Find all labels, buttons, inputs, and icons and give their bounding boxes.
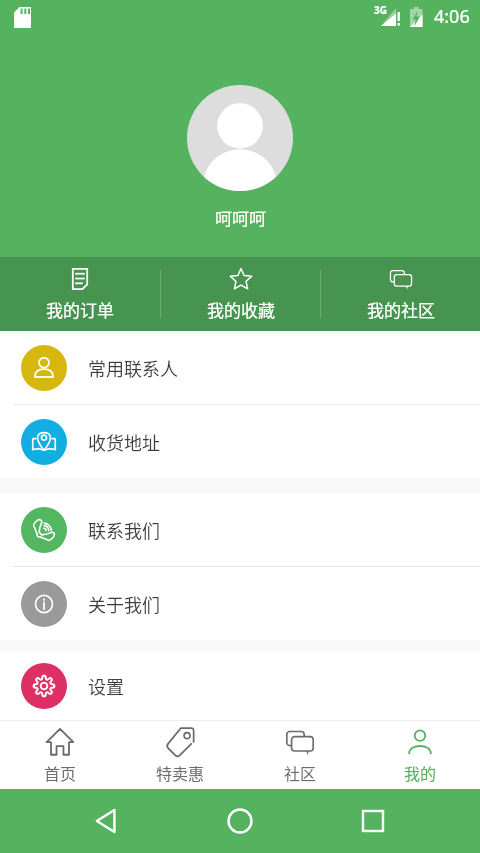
button[interactable]: 我的 (360, 721, 480, 789)
staticText: 设置 (88, 673, 124, 699)
button[interactable]: 设置 (0, 652, 480, 720)
staticText: 我的社区 (367, 297, 435, 322)
button[interactable]: 我的社区 (321, 257, 480, 331)
staticText: 社区 (284, 761, 317, 784)
button[interactable]: 我的收藏 (161, 257, 320, 331)
staticText: 首页 (44, 761, 77, 784)
staticText: 我的 (404, 761, 437, 784)
button[interactable]: 收货地址 (0, 405, 480, 478)
staticText: 关于我们 (88, 591, 160, 617)
staticText: 我的订单 (46, 297, 114, 322)
button[interactable]: 联系我们 (0, 493, 480, 566)
staticText: 联系我们 (88, 517, 160, 543)
staticText: 常用联系人 (88, 355, 178, 381)
staticText: 呵呵呵 (215, 205, 266, 230)
button[interactable]: Profile avatar (187, 85, 293, 191)
button[interactable]: Home (214, 795, 266, 847)
staticText: 我的收藏 (207, 297, 275, 322)
button[interactable]: 关于我们 (0, 567, 480, 640)
staticText: 3G (374, 3, 387, 17)
button[interactable]: Back (81, 795, 133, 847)
button[interactable]: 常用联系人 (0, 331, 480, 404)
staticText: 特卖惠 (156, 761, 205, 784)
staticText: 收货地址 (88, 429, 160, 455)
button[interactable]: 社区 (240, 721, 360, 789)
button[interactable]: 特卖惠 (120, 721, 240, 789)
staticText: 4:06 (434, 4, 470, 29)
button[interactable]: Recents (347, 795, 399, 847)
button[interactable]: 我的订单 (0, 257, 160, 331)
button[interactable]: 首页 (0, 721, 120, 789)
